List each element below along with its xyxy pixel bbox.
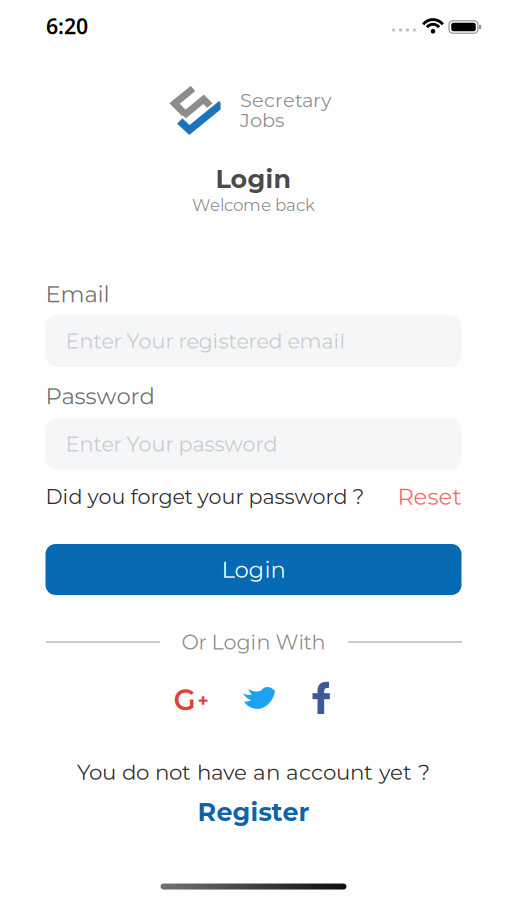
button[interactable]: Register: [197, 797, 309, 827]
staticText: Register: [197, 797, 309, 827]
button[interactable]: [302, 678, 342, 716]
staticText: G: [173, 682, 195, 717]
staticText: Enter Your registered email: [65, 328, 345, 354]
staticText: Email: [45, 280, 109, 308]
staticText: 6:20: [46, 12, 88, 40]
staticText: +: [197, 689, 208, 711]
button[interactable]: Enter Your password: [45, 418, 461, 470]
button[interactable]: G: [169, 682, 213, 718]
staticText: Welcome back: [192, 195, 315, 215]
button[interactable]: Enter Your registered email: [45, 315, 461, 367]
staticText: Did you forget your password ?: [45, 484, 364, 509]
button[interactable]: Login: [45, 544, 461, 595]
staticText: Secretary: [240, 88, 331, 112]
staticText: Password: [45, 382, 154, 410]
staticText: Login: [221, 556, 285, 583]
staticText: Or Login With: [181, 629, 325, 655]
staticText: Enter Your password: [65, 431, 277, 457]
staticText: Login: [215, 164, 291, 194]
staticText: Reset: [397, 483, 461, 510]
staticText: Jobs: [240, 108, 284, 132]
staticText: You do not have an account yet ?: [77, 759, 430, 785]
button[interactable]: [236, 680, 280, 716]
button[interactable]: Reset: [397, 483, 461, 510]
